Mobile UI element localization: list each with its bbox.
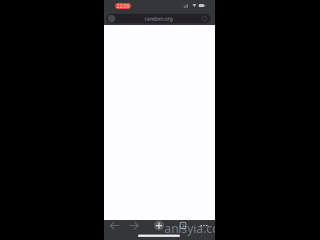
staticText: anisyia.com	[164, 220, 230, 236]
staticText: random.org	[144, 15, 172, 22]
button[interactable]: New tab	[152, 219, 166, 232]
button[interactable]: More options	[197, 219, 211, 232]
staticText: 1	[182, 223, 184, 228]
staticText: 22:09	[116, 2, 129, 10]
button[interactable]: Back	[107, 219, 122, 232]
button[interactable]: Forward	[127, 219, 142, 232]
button[interactable]: Tabs	[176, 219, 190, 232]
button[interactable]: random.org	[106, 14, 210, 23]
